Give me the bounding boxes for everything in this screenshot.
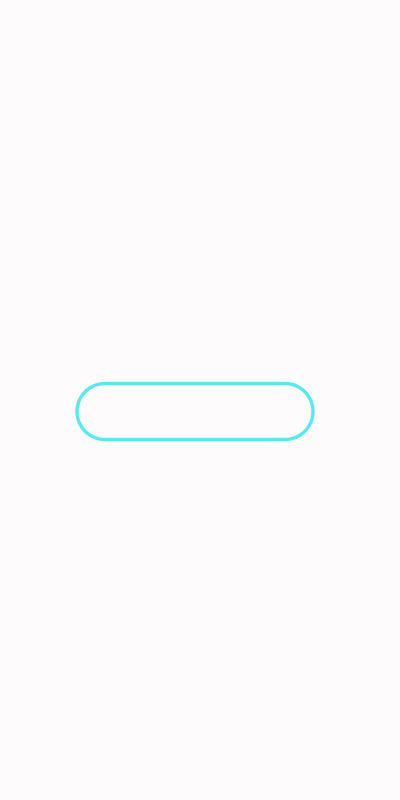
button[interactable]: Continue: [77, 383, 313, 439]
